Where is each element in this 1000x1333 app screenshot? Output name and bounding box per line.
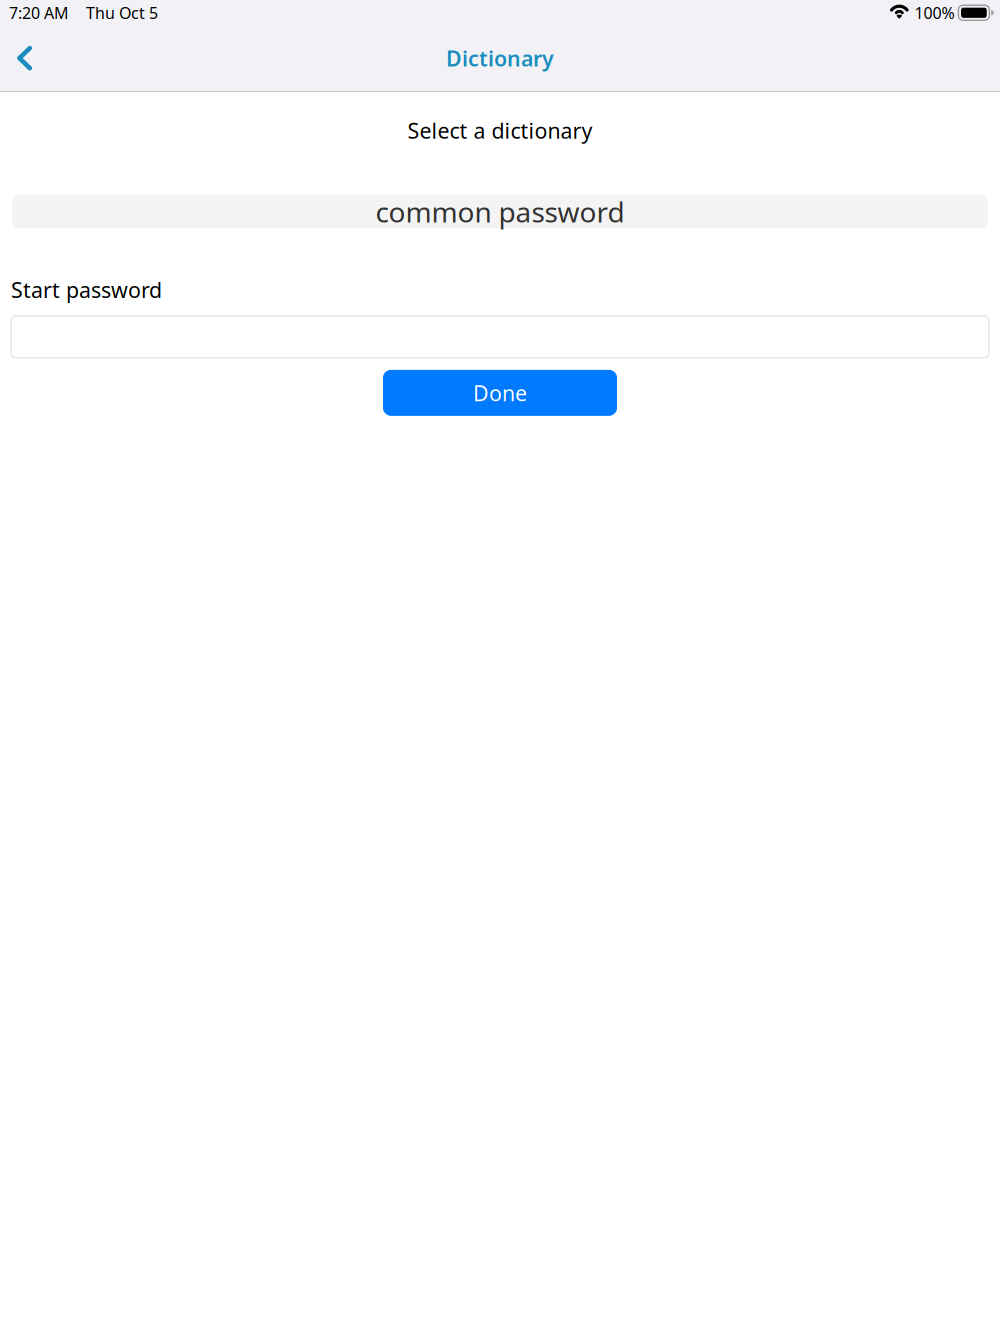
button[interactable]: Back <box>0 30 48 87</box>
button[interactable]: Start password <box>11 316 989 358</box>
staticText: Dictionary <box>446 44 554 72</box>
staticText: Thu Oct 5 <box>86 2 158 23</box>
button[interactable]: common password <box>12 194 988 228</box>
staticText: common password <box>375 193 624 230</box>
button[interactable]: Done <box>383 370 617 416</box>
staticText: Start password <box>11 275 162 304</box>
staticText: 100% <box>914 2 954 23</box>
staticText: Select a dictionary <box>407 116 592 144</box>
staticText: 7:20 AM <box>9 2 69 23</box>
staticText: Done <box>473 379 527 407</box>
